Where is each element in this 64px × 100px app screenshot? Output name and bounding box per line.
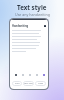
staticText: Align	[38, 82, 44, 85]
staticText: Use any handwriting	[15, 12, 50, 17]
button[interactable]: Text Size	[23, 81, 34, 86]
staticText: Handwriting	[12, 24, 29, 28]
staticText: Font	[15, 82, 20, 85]
staticText: Text style	[17, 3, 47, 11]
button[interactable]: Font	[12, 81, 22, 86]
button[interactable]: Align	[35, 81, 46, 86]
staticText: Text Size	[24, 82, 33, 85]
